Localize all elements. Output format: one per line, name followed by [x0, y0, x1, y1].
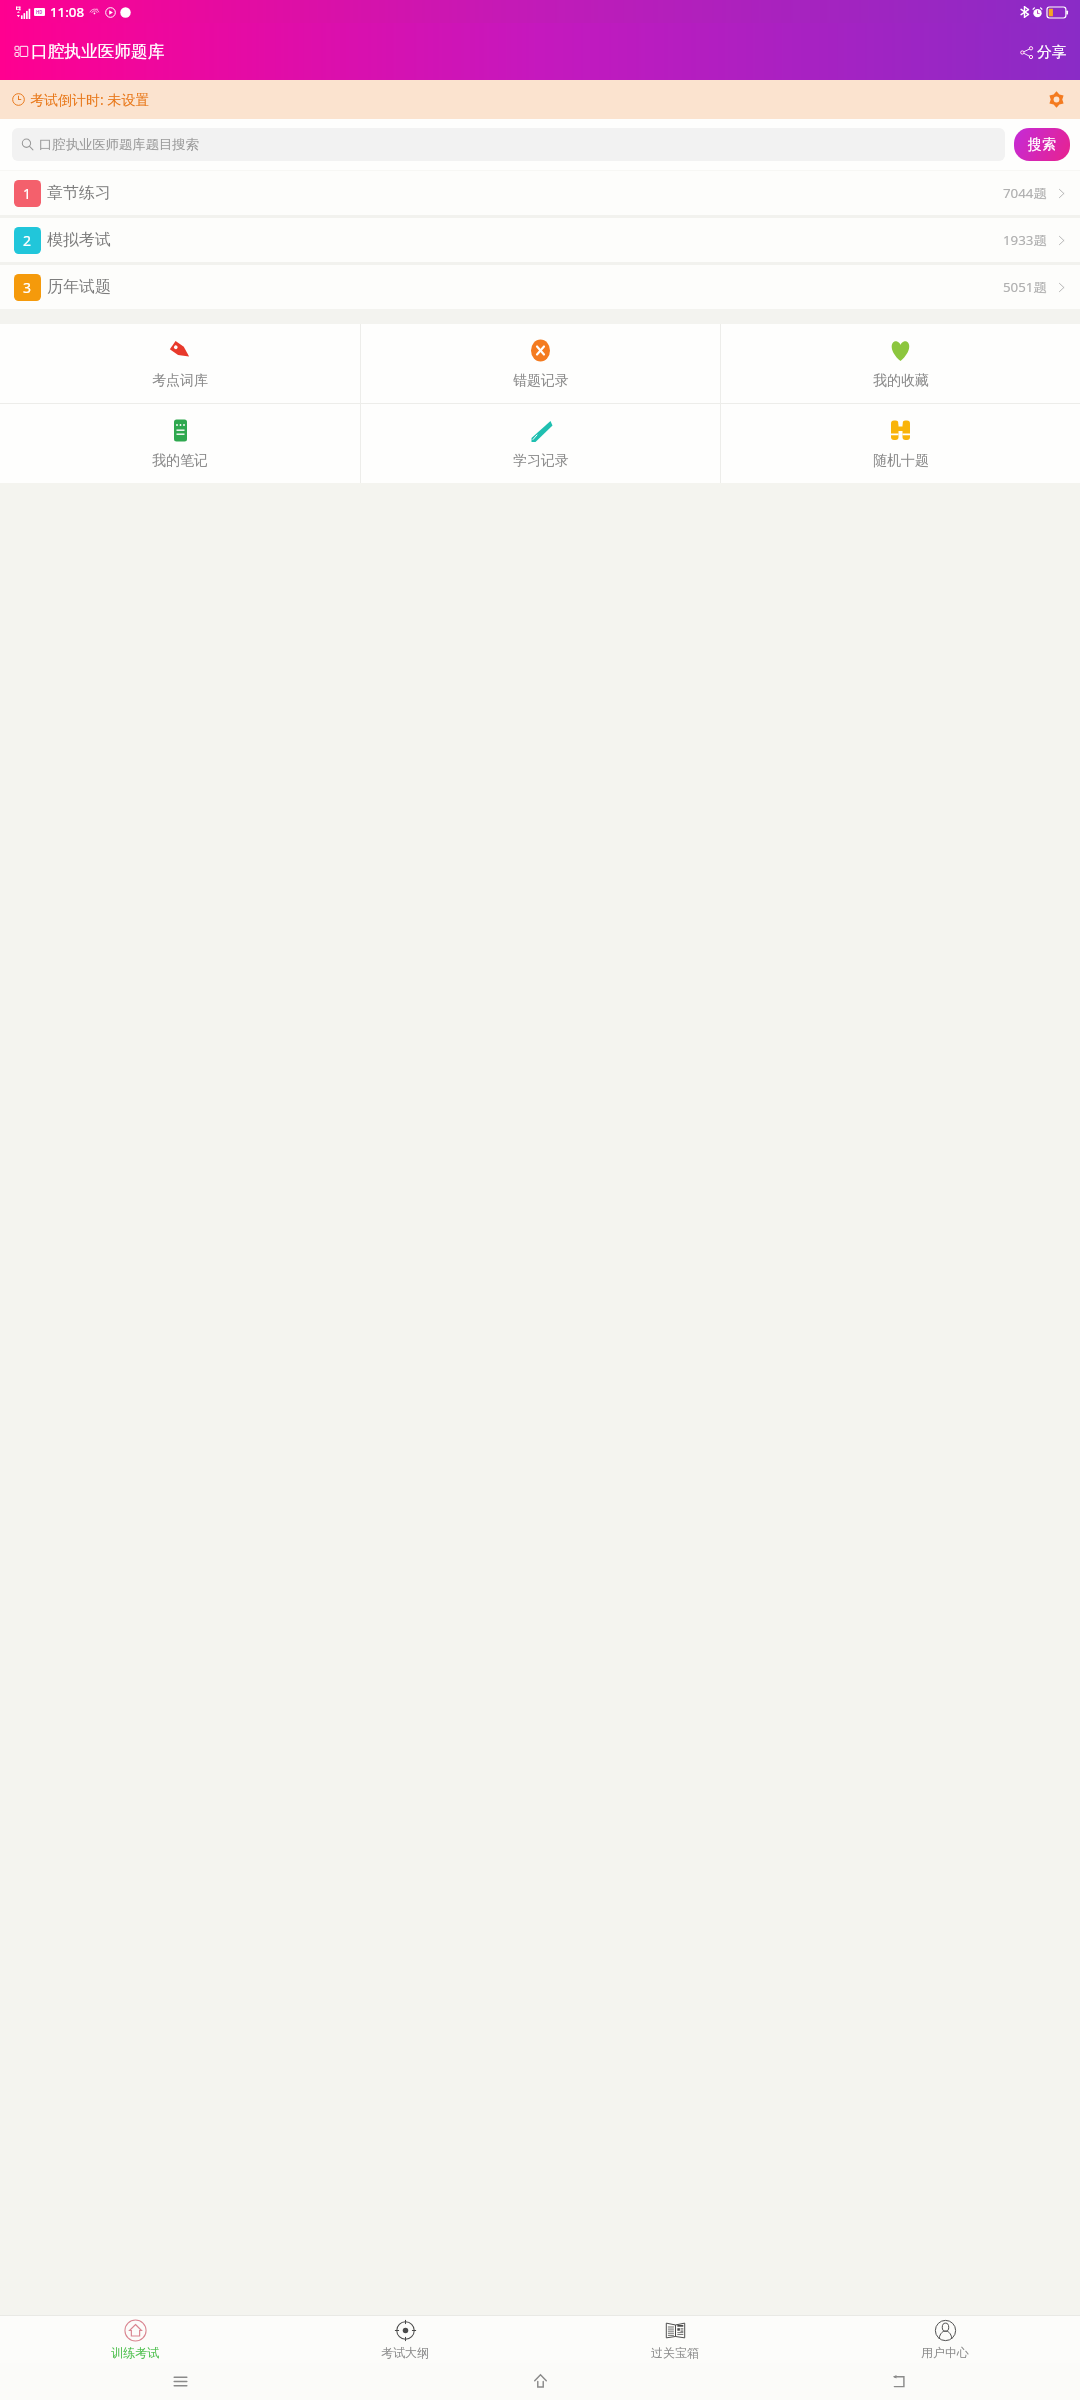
- staticText: 训练考试: [111, 2345, 159, 2360]
- staticText: 1: [23, 184, 32, 203]
- button[interactable]: 搜索: [1014, 128, 1070, 161]
- staticText: 11:08: [50, 3, 85, 21]
- button[interactable]: 2: [0, 218, 1080, 262]
- staticText: 考点词库: [152, 372, 208, 390]
- button[interactable]: 分享: [1006, 33, 1080, 71]
- button[interactable]: 口腔执业医师题库题目搜索: [12, 128, 1005, 161]
- button[interactable]: 我的笔记: [0, 404, 360, 483]
- button[interactable]: 我的收藏: [721, 324, 1080, 403]
- button[interactable]: 错题记录: [361, 324, 720, 403]
- button[interactable]: 学习记录: [361, 404, 720, 483]
- button[interactable]: 过关宝箱: [540, 2316, 810, 2363]
- staticText: 5051题: [1003, 278, 1047, 296]
- staticText: 错题记录: [513, 372, 569, 390]
- staticText: 1933题: [1003, 231, 1047, 249]
- button[interactable]: 考试倒计时: 未设置: [0, 80, 1080, 119]
- button[interactable]: 考点词库: [0, 324, 360, 403]
- staticText: 过关宝箱: [651, 2345, 699, 2360]
- staticText: 学习记录: [513, 452, 569, 470]
- staticText: 考试倒计时: 未设置: [30, 90, 150, 109]
- button[interactable]: 训练考试: [0, 2316, 270, 2363]
- staticText: 搜索: [1028, 136, 1056, 154]
- staticText: 7044题: [1003, 184, 1047, 202]
- button[interactable]: 用户中心: [810, 2316, 1080, 2363]
- staticText: 口腔执业医师题库: [31, 41, 165, 62]
- staticText: HD: [36, 9, 43, 15]
- staticText: 3: [23, 278, 32, 297]
- staticText: 随机十题: [873, 452, 929, 470]
- button[interactable]: Back: [885, 2366, 916, 2397]
- staticText: 口腔执业医师题库题目搜索: [39, 136, 199, 153]
- button[interactable]: 考试大纲: [270, 2316, 540, 2363]
- staticText: 历年试题: [47, 277, 111, 297]
- button[interactable]: 3: [0, 265, 1080, 309]
- staticText: 考试大纲: [381, 2345, 429, 2360]
- staticText: 用户中心: [921, 2345, 969, 2360]
- button[interactable]: 随机十题: [721, 404, 1080, 483]
- button[interactable]: 1: [0, 171, 1080, 215]
- staticText: 分享: [1037, 43, 1067, 61]
- button[interactable]: 设置: [1045, 88, 1068, 111]
- button[interactable]: Home: [525, 2366, 556, 2397]
- button[interactable]: Recents: [166, 2367, 195, 2396]
- staticText: 章节练习: [47, 183, 111, 203]
- staticText: 我的笔记: [152, 452, 208, 470]
- staticText: 模拟考试: [47, 230, 111, 250]
- staticText: 2: [23, 231, 32, 250]
- staticText: 我的收藏: [873, 372, 929, 390]
